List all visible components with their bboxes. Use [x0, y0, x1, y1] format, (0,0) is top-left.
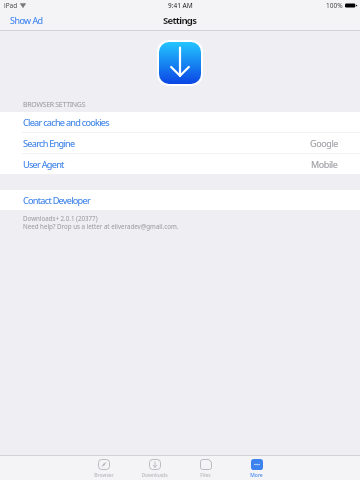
button[interactable]: Files	[180, 456, 231, 479]
other: Files	[200, 459, 212, 470]
other: More	[251, 459, 263, 470]
other: Downloads	[149, 459, 161, 470]
button[interactable]: More	[231, 456, 282, 479]
button[interactable]: Contact Developer	[0, 190, 360, 210]
button[interactable]: Search Engine	[0, 133, 360, 153]
staticText: Downloads+ 2.0.1 (20377)	[23, 214, 98, 222]
staticText: Downloads	[141, 472, 168, 479]
staticText: Need help? Drop us a letter at eliverade…	[23, 222, 179, 230]
other: Browser	[98, 459, 110, 470]
staticText: Show Ad	[10, 14, 43, 26]
staticText: Contact Developer	[23, 194, 90, 207]
staticText: Settings	[163, 14, 197, 27]
staticText: Browser	[94, 472, 114, 479]
staticText: 100%	[326, 1, 343, 10]
staticText: iPad	[4, 1, 18, 10]
button[interactable]: Downloads	[129, 456, 180, 479]
staticText: BROWSER SETTINGS	[23, 100, 86, 109]
staticText: 9:41 AM	[168, 1, 193, 10]
button[interactable]: Browser	[78, 456, 129, 479]
staticText: Clear cache and cookies	[23, 116, 109, 129]
staticText: Files	[200, 472, 211, 479]
staticText: Google	[310, 137, 338, 149]
staticText: User Agent	[23, 158, 64, 171]
button[interactable]: Clear cache and cookies	[0, 112, 360, 132]
button[interactable]: User Agent	[0, 154, 360, 174]
staticText: Search Engine	[23, 137, 75, 150]
staticText: Mobile	[311, 158, 338, 170]
button[interactable]: Show Ad	[0, 12, 53, 30]
staticText: More	[250, 472, 263, 479]
